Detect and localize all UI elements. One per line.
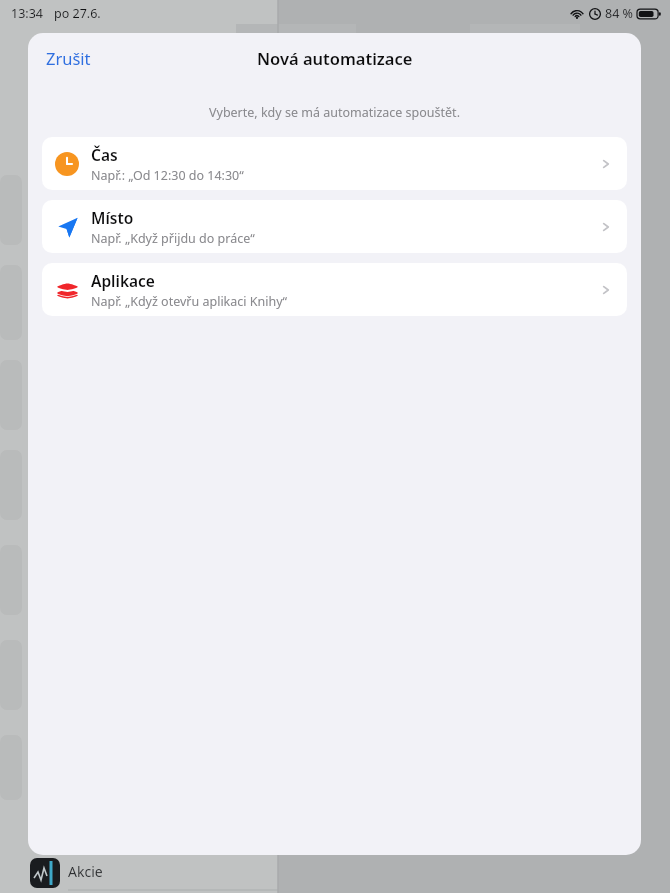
staticText: Aplikace: [91, 270, 155, 291]
staticText: Čas: [91, 144, 118, 165]
staticText: Místo: [91, 207, 134, 228]
staticText: Zrušit: [46, 47, 91, 69]
staticText: Např. „Když přijdu do práce“: [91, 230, 255, 247]
button[interactable]: Zrušit: [34, 41, 103, 75]
staticText: po 27.6.: [54, 5, 101, 22]
button[interactable]: Čas: [42, 137, 627, 190]
button[interactable]: Aplikace: [42, 263, 627, 316]
staticText: Akcie: [68, 862, 103, 881]
staticText: Nová automatizace: [257, 47, 413, 69]
staticText: Vyberte, kdy se má automatizace spouštět…: [209, 104, 460, 121]
staticText: Např.: „Od 12:30 do 14:30“: [91, 167, 244, 184]
button[interactable]: Místo: [42, 200, 627, 253]
staticText: 84 %: [605, 5, 633, 22]
staticText: Např. „Když otevřu aplikaci Knihy“: [91, 293, 288, 310]
staticText: 13:34: [11, 5, 43, 22]
